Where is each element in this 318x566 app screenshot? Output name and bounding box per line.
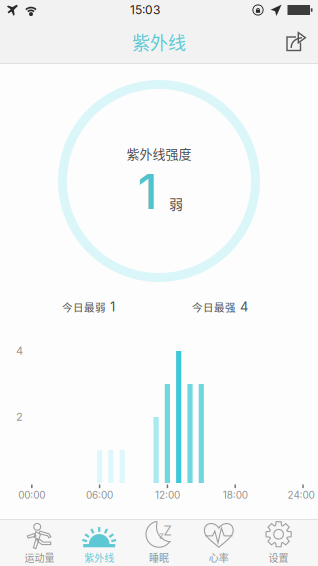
staticText: 弱 — [169, 193, 183, 213]
button[interactable]: Share — [274, 20, 318, 64]
staticText: Z — [164, 523, 172, 539]
staticText: 24:00 — [287, 489, 314, 501]
button[interactable]: z — [129, 519, 189, 566]
staticText: 2 — [16, 410, 23, 423]
staticText: 1 — [137, 162, 157, 221]
staticText: 今日最强 — [192, 299, 236, 314]
staticText: 运动量 — [24, 550, 54, 565]
staticText: 今日最弱 — [62, 299, 106, 314]
staticText: 心率 — [209, 550, 229, 565]
button[interactable]: 紫外线 — [69, 519, 129, 566]
staticText: 4 — [236, 299, 248, 315]
staticText: 00:00 — [18, 489, 45, 501]
button[interactable]: 运动量 — [9, 519, 69, 566]
staticText: 18:00 — [223, 489, 248, 501]
button[interactable]: 心率 — [189, 519, 249, 566]
button[interactable]: 设置 — [249, 519, 308, 566]
staticText: 紫外线 — [84, 550, 114, 565]
staticText: 紫外线强度 — [126, 144, 191, 163]
staticText: z — [159, 530, 164, 541]
staticText: 紫外线 — [132, 29, 186, 55]
staticText: 12:00 — [155, 489, 180, 501]
staticText: 睡眠 — [149, 550, 169, 565]
staticText: 06:00 — [86, 489, 113, 501]
staticText: 15:03 — [130, 3, 160, 17]
staticText: 4 — [16, 344, 23, 357]
staticText: 1 — [106, 299, 115, 315]
staticText: 设置 — [269, 550, 289, 565]
